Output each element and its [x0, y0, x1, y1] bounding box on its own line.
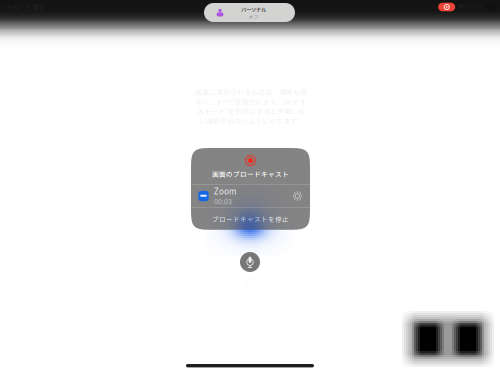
button[interactable]: Focus: Personal, Off	[204, 3, 295, 22]
staticText: パーソナル	[241, 5, 266, 13]
button[interactable]: Microphone off	[240, 252, 260, 272]
staticText: 00:03	[214, 197, 232, 206]
button[interactable]: Zoom, broadcasting, 00:03	[191, 185, 310, 207]
staticText: Zoom	[214, 186, 236, 197]
staticText: 画面に表示されるものは、通知も含めて、すべて収録されます。“おやすみモード”を有…	[195, 87, 307, 126]
staticText: 画面のブロードキャスト	[212, 169, 289, 179]
staticText: ブロードキャストを停止	[212, 214, 289, 224]
staticText: オフ	[248, 13, 258, 20]
button[interactable]: ブロードキャストを停止	[191, 208, 310, 230]
